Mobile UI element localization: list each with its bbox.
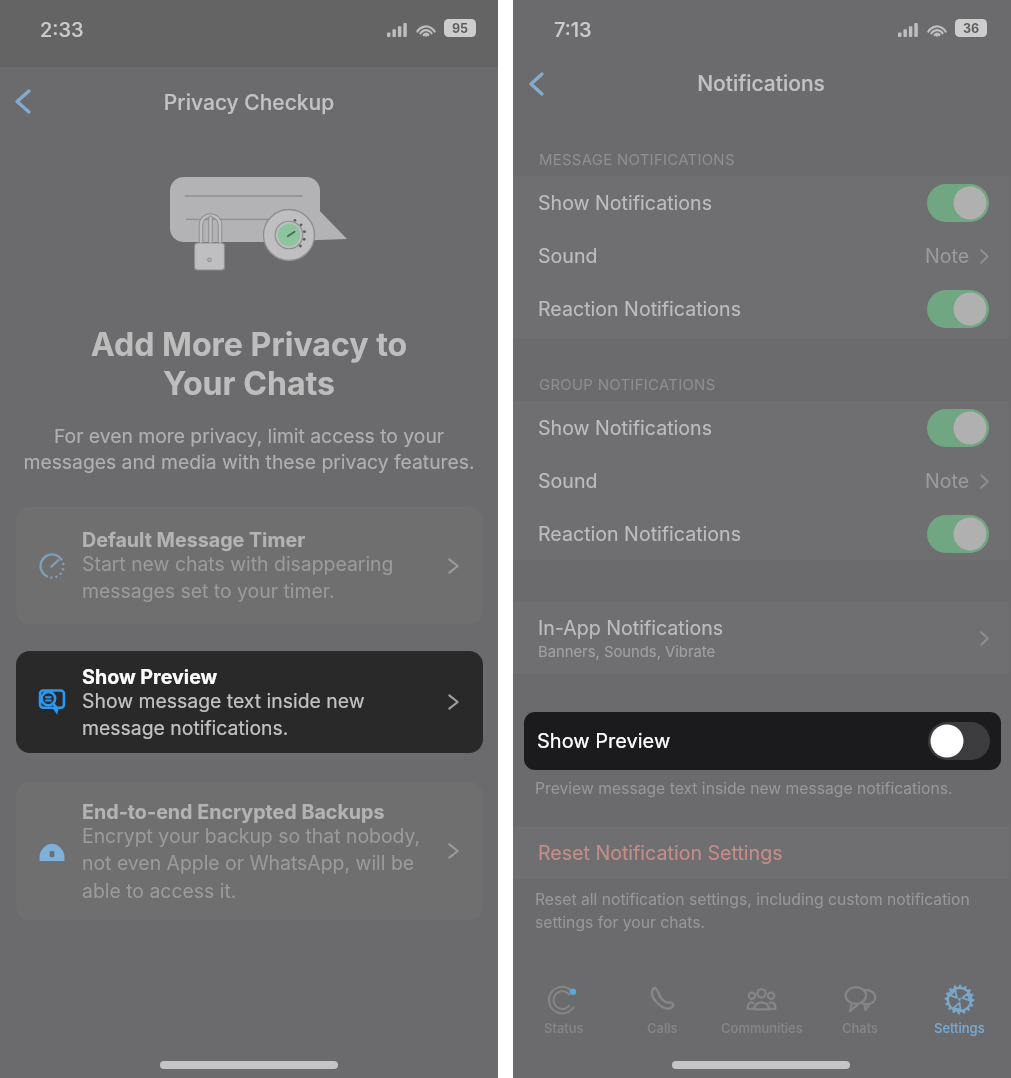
staticText: Communities <box>721 1020 803 1036</box>
button[interactable]: Back <box>0 78 46 124</box>
staticText: Show Notifications <box>538 191 712 215</box>
staticText: 7:13 <box>554 18 592 42</box>
staticText: Show Preview <box>82 665 218 689</box>
button[interactable]: Back <box>513 61 559 107</box>
staticText: MESSAGE NOTIFICATIONS <box>539 151 735 169</box>
staticText: Encrypt your backup so that nobody, not … <box>82 824 421 903</box>
staticText: 36 <box>963 21 980 36</box>
staticText: Note <box>925 469 970 493</box>
staticText: In-App Notifications <box>538 616 724 640</box>
button[interactable]: Default Message Timer <box>16 507 483 624</box>
staticText: Show Preview <box>537 729 671 753</box>
staticText: Reset all notification settings, includi… <box>535 890 970 931</box>
staticText: Status <box>544 1020 584 1036</box>
staticText: Sound <box>538 244 598 268</box>
staticText: For even more privacy, limit access to y… <box>8 424 490 473</box>
button[interactable]: Reaction Notifications <box>513 282 1009 335</box>
staticText: Privacy Checkup <box>0 90 498 115</box>
staticText: Banners, Sounds, Vibrate <box>538 643 716 661</box>
staticText: 2:33 <box>40 18 84 42</box>
button[interactable]: Show Preview <box>16 651 483 753</box>
staticText: Chats <box>842 1020 879 1036</box>
button[interactable]: Reset Notification Settings <box>513 827 1009 879</box>
button[interactable]: Reaction Notifications <box>513 507 1009 560</box>
staticText: Reset Notification Settings <box>538 841 783 865</box>
staticText: Show Notifications <box>538 416 712 440</box>
button[interactable]: Chats <box>811 978 910 1036</box>
staticText: Start new chats with disappearing messag… <box>82 552 394 603</box>
staticText: Preview message text inside new message … <box>535 779 953 798</box>
button[interactable]: Show Preview <box>524 712 1001 770</box>
button[interactable]: Sound <box>513 454 1009 507</box>
button[interactable]: Show Notifications <box>513 401 1009 454</box>
staticText: Settings <box>934 1020 985 1036</box>
button[interactable]: Calls <box>613 978 712 1036</box>
button[interactable]: Sound <box>513 229 1009 282</box>
staticText: Sound <box>538 469 598 493</box>
staticText: Reaction Notifications <box>538 522 741 546</box>
staticText: Calls <box>647 1020 678 1036</box>
button[interactable]: Communities <box>712 978 811 1036</box>
button[interactable]: In-App Notifications <box>513 602 1009 674</box>
staticText: End-to-end Encrypted Backups <box>82 800 385 824</box>
staticText: Add More Privacy to Your Chats <box>12 325 486 403</box>
staticText: 95 <box>452 21 469 36</box>
staticText: Reaction Notifications <box>538 297 741 321</box>
button[interactable]: End-to-end Encrypted Backups <box>16 782 483 920</box>
staticText: Note <box>925 244 970 268</box>
staticText: Default Message Timer <box>82 528 306 552</box>
staticText: GROUP NOTIFICATIONS <box>539 376 716 394</box>
staticText: Show message text inside new message not… <box>82 689 365 740</box>
button[interactable]: Status <box>514 978 613 1036</box>
staticText: Notifications <box>513 71 1009 96</box>
button[interactable]: Settings <box>910 978 1009 1036</box>
button[interactable]: Show Notifications <box>513 176 1009 229</box>
